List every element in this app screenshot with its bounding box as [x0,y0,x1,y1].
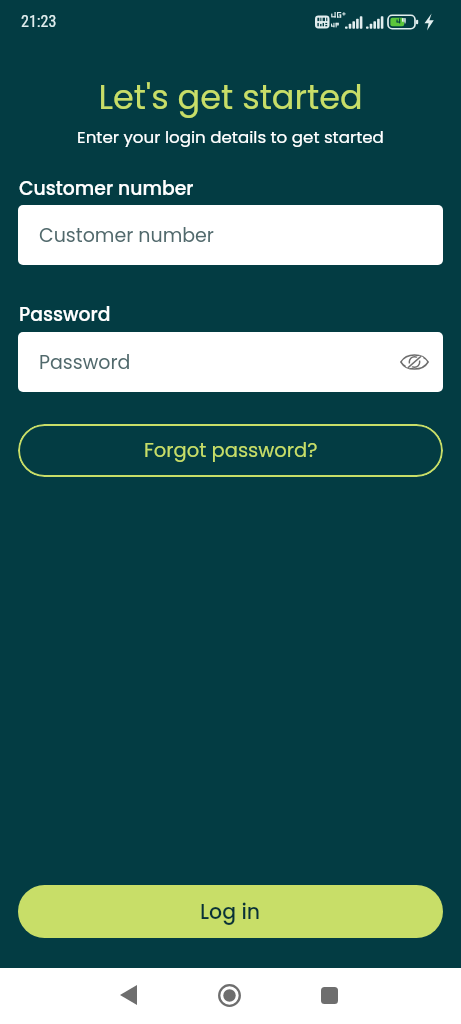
button[interactable]: Password [18,332,443,392]
button[interactable]: Log in [18,885,443,938]
staticText: Let's get started [0,74,461,121]
staticText: Password [19,301,111,327]
staticText: Customer number [39,222,214,249]
button[interactable]: Recent apps [309,975,349,1015]
button[interactable]: Home [209,975,249,1015]
staticText: 21:23 [21,12,57,31]
staticText: Log in [200,897,261,926]
staticText: Forgot password? [144,437,318,464]
button[interactable]: Back [108,975,148,1015]
staticText: Customer number [19,175,194,201]
button[interactable]: Customer number [18,205,443,265]
button[interactable]: Forgot password? [18,424,443,477]
button[interactable]: Show password [392,340,436,384]
staticText: Password [39,349,131,376]
staticText: Enter your login details to get started [0,125,461,148]
